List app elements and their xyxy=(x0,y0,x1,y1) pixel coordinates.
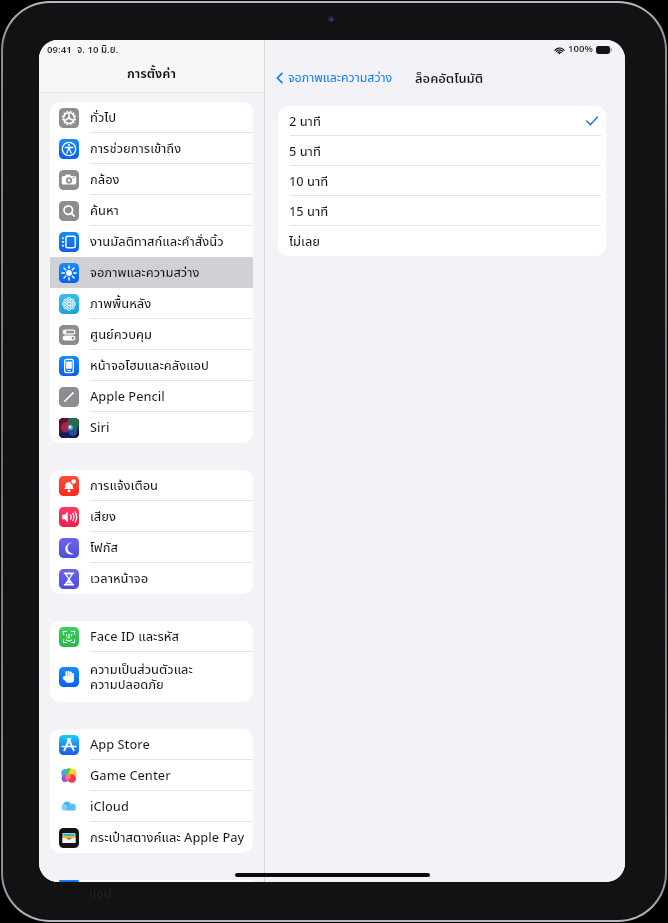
staticText: 15 นาที xyxy=(289,202,329,221)
other: Back xyxy=(273,71,287,85)
staticText: แอป xyxy=(89,884,112,903)
button[interactable]: ทั่วไป xyxy=(50,102,253,133)
staticText: 10 นาที xyxy=(289,172,329,191)
button[interactable]: ภาพพื้นหลัง xyxy=(50,288,253,319)
button[interactable]: Back xyxy=(271,64,399,92)
button[interactable]: 5 นาที xyxy=(278,136,606,166)
other: Battery xyxy=(596,46,612,54)
staticText: Siri xyxy=(90,418,110,437)
button[interactable]: กระเป๋าสตางค์และ Apple Pay xyxy=(50,822,253,853)
staticText: Game Center xyxy=(90,766,171,785)
staticText: ค้นหา xyxy=(90,201,119,220)
button[interactable]: 15 นาที xyxy=(278,196,606,226)
staticText: การช่วยการเข้าถึง xyxy=(90,139,182,158)
button[interactable]: ค้นหา xyxy=(50,195,253,226)
staticText: โฟกัส xyxy=(90,538,118,557)
button[interactable]: หน้าจอโฮมและคลังแอป xyxy=(50,350,253,381)
staticText: App Store xyxy=(90,735,150,754)
button[interactable]: Apple Pencil xyxy=(50,381,253,412)
button[interactable]: iCloud xyxy=(50,791,253,822)
button[interactable]: 10 นาที xyxy=(278,166,606,196)
staticText: จอภาพและความสว่าง xyxy=(288,69,393,88)
staticText: จ. 10 มิ.ย. xyxy=(77,43,119,58)
staticText: iCloud xyxy=(90,797,129,816)
button[interactable]: ศูนย์ควบคุม xyxy=(50,319,253,350)
other: Wi-Fi xyxy=(554,45,565,55)
staticText: กล้อง xyxy=(90,170,120,189)
staticText: ล็อคอัตโนมัติ xyxy=(415,69,484,88)
button[interactable]: 2 นาที xyxy=(278,106,606,136)
button[interactable]: เวลาหน้าจอ xyxy=(50,563,253,594)
button[interactable]: แอป xyxy=(50,880,253,882)
button[interactable]: ความเป็นส่วนตัวและ ความปลอดภัย xyxy=(50,652,253,702)
button[interactable]: ไม่เลย xyxy=(278,226,606,256)
staticText: หน้าจอโฮมและคลังแอป xyxy=(90,356,209,375)
staticText: งานมัลติทาสก์และคำสั่งนิ้ว xyxy=(90,232,224,251)
staticText: การแจ้งเตือน xyxy=(90,476,159,495)
button[interactable]: Game Center xyxy=(50,760,253,791)
staticText: ความเป็นส่วนตัวและ ความปลอดภัย xyxy=(90,660,193,695)
button[interactable]: โฟกัส xyxy=(50,532,253,563)
staticText: Face ID และรหัส xyxy=(90,627,179,646)
staticText: 5 นาที xyxy=(289,142,321,161)
button[interactable]: Siri xyxy=(50,412,253,443)
staticText: จอภาพและความสว่าง xyxy=(90,263,200,282)
staticText: 2 นาที xyxy=(289,112,321,131)
staticText: ไม่เลย xyxy=(289,232,320,251)
staticText: 09:41 xyxy=(47,43,72,58)
button[interactable]: การช่วยการเข้าถึง xyxy=(50,133,253,164)
button[interactable]: การแจ้งเตือน xyxy=(50,470,253,501)
staticText: ศูนย์ควบคุม xyxy=(90,325,152,344)
staticText: 100% xyxy=(568,42,593,57)
staticText: ภาพพื้นหลัง xyxy=(90,294,152,313)
staticText: Apple Pencil xyxy=(90,387,165,406)
staticText: ทั่วไป xyxy=(90,108,117,127)
button[interactable]: App Store xyxy=(50,729,253,760)
button[interactable]: กล้อง xyxy=(50,164,253,195)
button[interactable]: เสียง xyxy=(50,501,253,532)
staticText: กระเป๋าสตางค์และ Apple Pay xyxy=(90,828,245,847)
other: Selected xyxy=(586,115,598,127)
button[interactable]: จอภาพและความสว่าง xyxy=(50,257,253,288)
staticText: การตั้งค่า xyxy=(127,65,176,84)
staticText: เสียง xyxy=(90,507,116,526)
button[interactable]: Face ID และรหัส xyxy=(50,621,253,652)
button[interactable]: งานมัลติทาสก์และคำสั่งนิ้ว xyxy=(50,226,253,257)
staticText: เวลาหน้าจอ xyxy=(90,569,149,588)
